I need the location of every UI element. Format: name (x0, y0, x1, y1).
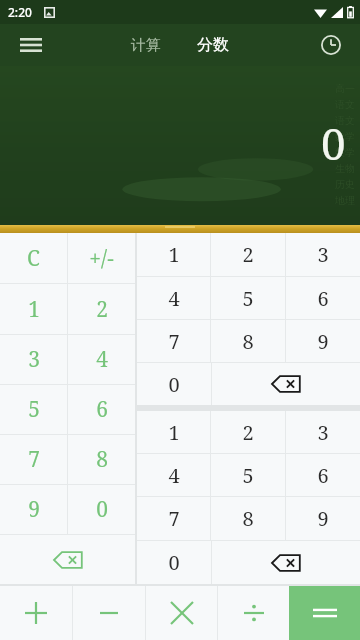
button[interactable]: 计算 (131, 36, 161, 55)
button[interactable]: 8 (68, 435, 135, 484)
staticText: 0 (168, 371, 180, 398)
button[interactable]: 9 (0, 485, 67, 534)
button[interactable]: Menu (14, 28, 48, 62)
button[interactable]: History (314, 28, 348, 62)
button[interactable]: 2 (211, 411, 285, 453)
button[interactable]: 9 (286, 320, 360, 362)
staticText: 数学 (335, 130, 355, 143)
staticText: 6 (317, 462, 329, 489)
staticText: 8 (242, 328, 254, 355)
button[interactable]: 3 (286, 411, 360, 453)
button[interactable]: 4 (137, 277, 210, 319)
staticText: 2 (242, 241, 254, 268)
button[interactable]: Equals (289, 586, 360, 640)
button[interactable]: 0 (68, 485, 135, 534)
staticText: 历史 (335, 178, 355, 191)
button[interactable]: 7 (0, 435, 67, 484)
button[interactable]: 2 (68, 284, 135, 334)
button[interactable]: 7 (137, 497, 210, 540)
staticText: 计算 (131, 36, 161, 55)
staticText: 数学 (335, 146, 355, 159)
button[interactable]: Backspace (0, 535, 135, 584)
button[interactable]: +/- (68, 233, 135, 283)
button[interactable]: 8 (211, 320, 285, 362)
staticText: 1 (28, 295, 40, 324)
staticText: 3 (28, 345, 40, 374)
staticText: 6 (96, 395, 108, 424)
staticText: 地理 (335, 194, 355, 207)
staticText: 9 (28, 495, 40, 524)
staticText: 5 (242, 285, 254, 312)
button[interactable]: 0 (137, 541, 211, 584)
staticText: 3 (317, 241, 329, 268)
staticText: 7 (168, 505, 180, 532)
button[interactable]: 1 (137, 233, 210, 276)
staticText: 1 (168, 419, 180, 446)
button[interactable]: 5 (0, 385, 67, 434)
staticText: 9 (317, 328, 329, 355)
staticText: 7 (28, 445, 40, 474)
staticText: 1 (168, 241, 180, 268)
staticText: 8 (242, 505, 254, 532)
staticText: 7 (168, 328, 180, 355)
button[interactable]: 3 (286, 233, 360, 276)
button[interactable]: Plus (0, 586, 72, 640)
staticText: 3 (317, 419, 329, 446)
staticText: 4 (168, 285, 180, 312)
button[interactable]: 3 (0, 335, 67, 384)
button[interactable]: 5 (211, 277, 285, 319)
button[interactable]: 4 (68, 335, 135, 384)
staticText: 2 (96, 295, 108, 324)
button[interactable]: Backspace (212, 363, 360, 405)
button[interactable]: C (0, 233, 67, 283)
button[interactable]: 7 (137, 320, 210, 362)
staticText: 0 (168, 549, 180, 576)
button[interactable]: 2 (211, 233, 285, 276)
staticText: 2 (242, 419, 254, 446)
staticText: C (27, 244, 40, 273)
button[interactable]: 分数 (197, 35, 229, 55)
button[interactable]: 9 (286, 497, 360, 540)
button[interactable]: 1 (0, 284, 67, 334)
staticText: 4 (96, 345, 108, 374)
staticText: 5 (242, 462, 254, 489)
button[interactable]: Multiply (146, 586, 217, 640)
staticText: 0 (321, 113, 346, 173)
staticText: 生物 (335, 162, 355, 175)
staticText: 4 (168, 462, 180, 489)
button[interactable]: Divide (218, 586, 289, 640)
staticText: 分数 (197, 35, 229, 55)
button[interactable]: Backspace (212, 541, 360, 584)
button[interactable]: 0 (137, 363, 211, 405)
button[interactable]: 1 (137, 411, 210, 453)
staticText: 6 (317, 285, 329, 312)
staticText: 0 (96, 495, 108, 524)
button[interactable]: 6 (286, 277, 360, 319)
button[interactable]: 6 (68, 385, 135, 434)
button[interactable]: 8 (211, 497, 285, 540)
staticText: 5 (28, 395, 40, 424)
button[interactable]: 4 (137, 454, 210, 496)
button[interactable]: Minus (73, 586, 145, 640)
staticText: 2:20 (8, 4, 32, 20)
staticText: 9 (317, 505, 329, 532)
staticText: 8 (96, 445, 108, 474)
button[interactable]: 5 (211, 454, 285, 496)
button[interactable]: 6 (286, 454, 360, 496)
staticText: +/- (89, 244, 114, 273)
